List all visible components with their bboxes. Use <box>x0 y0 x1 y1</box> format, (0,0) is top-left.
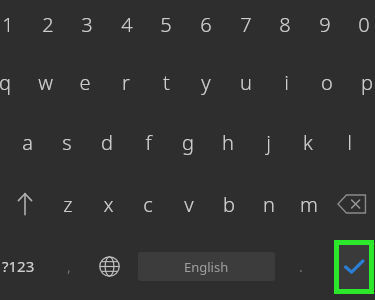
button[interactable]: 0 <box>345 7 375 41</box>
button[interactable]: i <box>267 65 305 99</box>
button[interactable]: , <box>52 248 86 284</box>
button[interactable]: j <box>249 125 287 159</box>
staticText: 8 <box>279 11 291 38</box>
button[interactable]: 2 <box>29 7 67 41</box>
other: Enter <box>339 245 369 289</box>
button[interactable]: x <box>89 187 127 221</box>
button[interactable]: p <box>348 65 375 99</box>
staticText: p <box>361 69 373 96</box>
staticText: n <box>263 191 275 218</box>
staticText: c <box>143 191 153 218</box>
button[interactable]: w <box>26 65 64 99</box>
staticText: a <box>22 129 33 156</box>
staticText: e <box>79 69 91 96</box>
button[interactable]: h <box>209 125 247 159</box>
staticText: f <box>145 129 152 156</box>
button[interactable]: u <box>227 65 265 99</box>
staticText: j <box>266 129 271 156</box>
staticText: . <box>299 257 303 276</box>
button[interactable]: e <box>66 65 104 99</box>
button[interactable]: r <box>107 65 145 99</box>
staticText: 9 <box>319 11 331 38</box>
staticText: z <box>63 191 73 218</box>
button[interactable]: c <box>129 187 167 221</box>
staticText: t <box>163 69 170 96</box>
button[interactable]: 9 <box>306 7 344 41</box>
staticText: q <box>0 69 11 96</box>
staticText: 1 <box>2 11 14 38</box>
button[interactable]: b <box>210 187 248 221</box>
staticText: ?123 <box>2 256 35 276</box>
staticText: k <box>303 129 313 156</box>
button[interactable]: m <box>290 187 328 221</box>
button[interactable]: d <box>88 125 126 159</box>
button[interactable]: o <box>308 65 346 99</box>
button[interactable]: z <box>49 187 87 221</box>
staticText: 6 <box>200 11 212 38</box>
button[interactable]: ?123 <box>0 248 44 284</box>
button[interactable]: Backspace <box>332 186 372 222</box>
button[interactable]: 8 <box>266 7 304 41</box>
button[interactable]: f <box>129 125 167 159</box>
staticText: English <box>184 258 229 276</box>
button[interactable]: 4 <box>108 7 146 41</box>
button[interactable]: q <box>0 65 24 99</box>
button[interactable]: English <box>138 252 275 281</box>
staticText: , <box>67 257 71 276</box>
button[interactable]: 5 <box>147 7 185 41</box>
button[interactable]: 6 <box>187 7 225 41</box>
staticText: i <box>284 69 289 96</box>
staticText: u <box>240 69 252 96</box>
staticText: b <box>223 191 235 218</box>
button[interactable]: g <box>169 125 207 159</box>
staticText: v <box>184 191 194 218</box>
staticText: 2 <box>42 11 54 38</box>
staticText: 7 <box>240 11 252 38</box>
staticText: o <box>321 69 333 96</box>
staticText: 5 <box>160 11 172 38</box>
button[interactable]: 3 <box>68 7 106 41</box>
button[interactable]: n <box>250 187 288 221</box>
button[interactable]: l <box>330 125 368 159</box>
button[interactable]: v <box>170 187 208 221</box>
staticText: x <box>103 191 114 218</box>
staticText: y <box>201 69 211 96</box>
button[interactable]: Change language <box>90 248 128 284</box>
button[interactable]: k <box>289 125 327 159</box>
button[interactable]: y <box>187 65 225 99</box>
staticText: m <box>300 191 318 218</box>
staticText: 0 <box>358 11 370 38</box>
staticText: h <box>222 129 234 156</box>
staticText: s <box>62 129 72 156</box>
staticText: 4 <box>121 11 133 38</box>
staticText: l <box>347 129 352 156</box>
staticText: 3 <box>81 11 93 38</box>
staticText: w <box>38 69 53 96</box>
button[interactable]: t <box>147 65 185 99</box>
button[interactable]: Enter <box>334 240 374 294</box>
button[interactable]: 1 <box>0 7 27 41</box>
staticText: r <box>122 69 130 96</box>
button[interactable]: 7 <box>227 7 265 41</box>
button[interactable]: a <box>8 125 46 159</box>
button[interactable]: Shift <box>4 186 46 222</box>
staticText: g <box>182 129 194 156</box>
button[interactable]: s <box>48 125 86 159</box>
staticText: d <box>101 129 113 156</box>
